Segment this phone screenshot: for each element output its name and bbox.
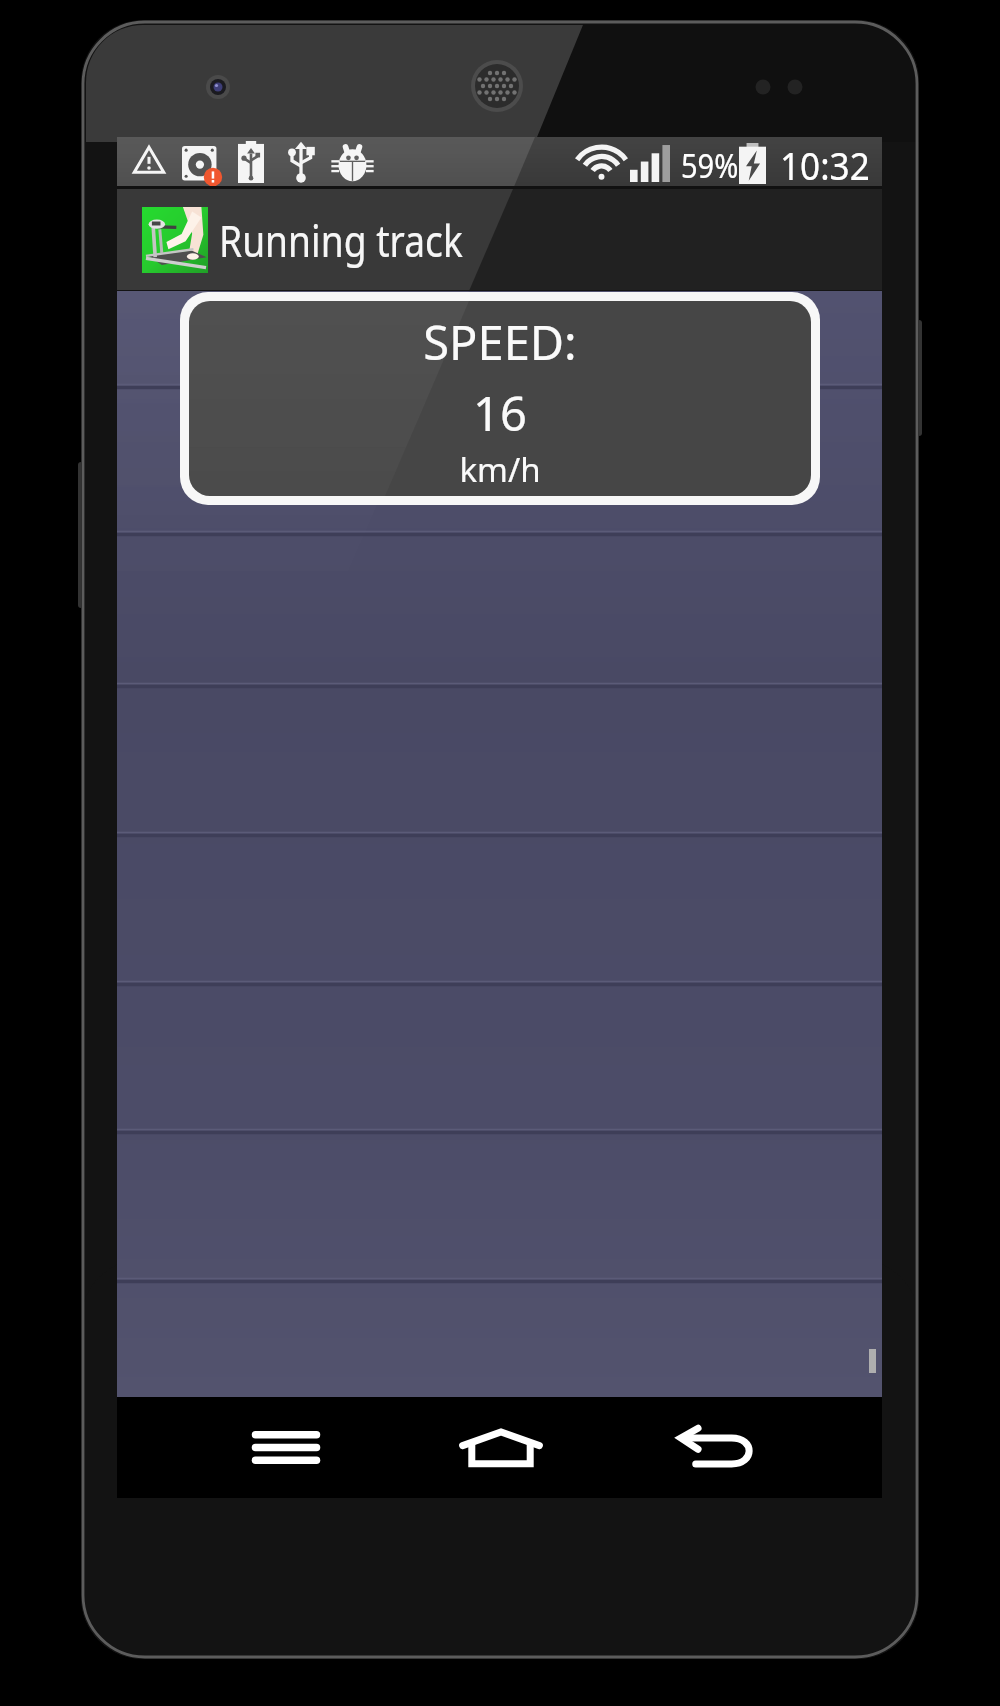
button[interactable]: Back [655, 1397, 776, 1498]
button[interactable]: SPEED: [189, 301, 811, 496]
button[interactable]: Home [440, 1397, 561, 1498]
staticText: 10:32 [780, 138, 870, 190]
staticText: 16 [473, 381, 527, 445]
staticText: km/h [459, 447, 541, 492]
staticText: Running track [219, 210, 463, 270]
staticText: SPEED: [423, 310, 577, 374]
button[interactable]: Menu [225, 1397, 346, 1498]
staticText: 59% [681, 143, 739, 188]
